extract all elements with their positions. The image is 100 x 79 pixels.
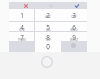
button[interactable]: Done: [71, 2, 83, 9]
staticText: ABC: [45, 15, 51, 19]
staticText: 9: [72, 33, 76, 42]
staticText: 5: [46, 23, 50, 32]
button[interactable]: 6: [61, 22, 87, 31]
staticText: JKL: [46, 28, 51, 32]
button[interactable]: 9: [61, 32, 87, 41]
button[interactable]: 3: [61, 9, 87, 21]
button[interactable]: 7: [9, 32, 34, 41]
button[interactable]: 0: [35, 41, 61, 52]
staticText: 1: [20, 11, 24, 20]
staticText: 7: [20, 33, 24, 42]
button[interactable]: 4: [9, 22, 34, 31]
staticText: +: [47, 47, 49, 51]
staticText: 4: [20, 23, 24, 32]
button[interactable]: Home: [41, 56, 53, 68]
button[interactable]: Hide keyboard: [45, 2, 57, 9]
button[interactable]: 1: [9, 9, 34, 21]
staticText: MNO: [70, 28, 78, 32]
button[interactable]: 2: [35, 9, 61, 21]
staticText: TUV: [45, 38, 51, 42]
staticText: 0: [46, 42, 50, 51]
staticText: DEF: [71, 15, 77, 19]
button[interactable]: 5: [35, 22, 61, 31]
staticText: WXYZ: [70, 38, 78, 42]
button[interactable]: 8: [35, 32, 61, 41]
staticText: 6: [72, 23, 76, 32]
staticText: GHI: [19, 28, 25, 32]
staticText: 3: [72, 11, 76, 20]
staticText: PQRS: [18, 38, 26, 42]
button[interactable]: Cancel: [20, 2, 32, 9]
staticText: 2: [46, 11, 50, 20]
button[interactable]: Delete: [60, 41, 86, 52]
staticText: 8: [46, 33, 50, 42]
